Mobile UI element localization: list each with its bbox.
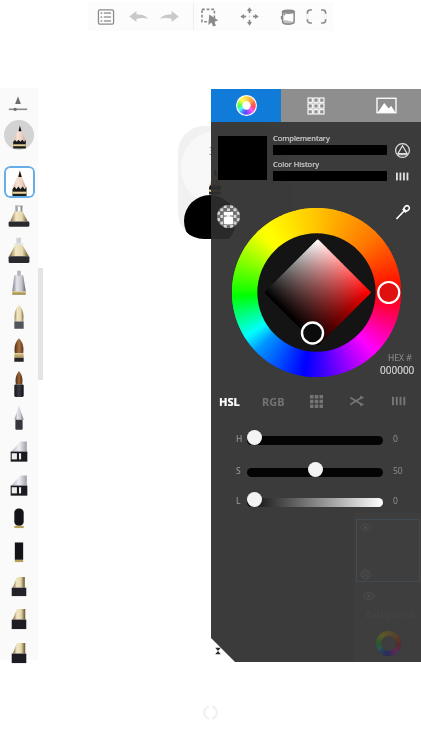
button[interactable]: Transparency	[211, 199, 245, 233]
button[interactable]: Color wheel tab	[211, 89, 281, 122]
button[interactable]: Redo	[155, 2, 184, 31]
button[interactable]: Brush 8	[3, 435, 35, 467]
button[interactable]: Palette tab	[281, 89, 351, 122]
staticText: H	[236, 433, 243, 445]
button[interactable]: Brush 1	[3, 200, 35, 232]
button[interactable]: Layers	[91, 2, 120, 31]
staticText: Complementary	[273, 133, 330, 143]
button[interactable]: Pencil brush	[4, 166, 35, 198]
button[interactable]: Fill bucket	[273, 2, 302, 31]
staticText: S	[236, 465, 241, 477]
button[interactable]: Harmony	[391, 139, 413, 161]
button[interactable]: Move	[235, 2, 264, 31]
button[interactable]: Brush 13	[3, 603, 35, 635]
button[interactable]: Brush preview	[178, 126, 292, 239]
button[interactable]: Undo	[124, 2, 153, 31]
button[interactable]: Brush 6	[3, 368, 35, 400]
button[interactable]: Brush 11	[3, 536, 35, 568]
button[interactable]: Brush 4	[3, 301, 35, 333]
button[interactable]: Palette bars	[391, 165, 413, 187]
staticText: 0	[393, 495, 398, 507]
button[interactable]: Image tab	[351, 89, 421, 122]
staticText: L	[236, 495, 241, 507]
button[interactable]: S slider	[247, 462, 383, 477]
button[interactable]: Swatches	[305, 390, 327, 412]
staticText: 0	[393, 433, 398, 445]
button[interactable]: Brush 9	[3, 469, 35, 501]
staticText: 3.	[209, 144, 218, 158]
button[interactable]: Brush size	[4, 92, 34, 118]
button[interactable]: Palette bars	[388, 390, 410, 412]
button[interactable]: Brush 3	[3, 267, 35, 299]
button[interactable]: Eyedropper	[389, 199, 415, 225]
button[interactable]: HSL	[219, 394, 240, 409]
button[interactable]: Current brush	[2, 118, 36, 152]
staticText: 50	[393, 465, 403, 477]
staticText: Color History	[273, 159, 320, 169]
button[interactable]: Shuffle	[346, 390, 368, 412]
button[interactable]: RGB	[262, 394, 285, 409]
button[interactable]: Brush 14	[3, 637, 35, 669]
button[interactable]: L slider	[247, 492, 383, 507]
button[interactable]: Brush 10	[3, 502, 35, 534]
button[interactable]: Brush 7	[3, 402, 35, 434]
staticText: 000000	[380, 363, 415, 377]
button[interactable]: Brush 12	[3, 570, 35, 602]
button[interactable]: Crop	[302, 2, 331, 31]
staticText: HEX #	[388, 352, 412, 364]
button[interactable]: H slider	[247, 430, 383, 445]
button[interactable]: Select	[195, 2, 224, 31]
button[interactable]: Brush 5	[3, 334, 35, 366]
button[interactable]: Brush 2	[3, 234, 35, 266]
